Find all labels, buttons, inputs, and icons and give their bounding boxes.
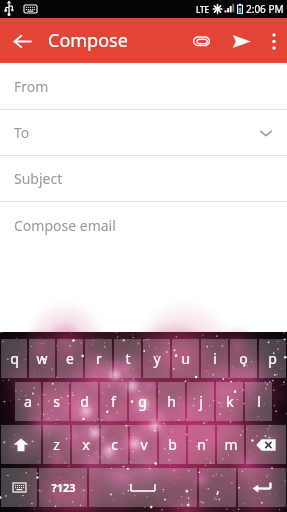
staticText: w <box>36 349 48 368</box>
button[interactable]: h <box>158 382 185 421</box>
staticText: v <box>140 435 148 454</box>
staticText: d <box>80 392 89 411</box>
staticText: To <box>14 123 30 142</box>
button[interactable]: m <box>217 425 244 464</box>
button[interactable]: More options <box>261 19 287 63</box>
button[interactable]: u <box>172 339 199 378</box>
button[interactable]: Shift <box>1 425 41 464</box>
staticText: Compose email <box>14 216 116 235</box>
staticText: x <box>82 435 90 454</box>
staticText: s <box>53 392 60 411</box>
button[interactable]: r <box>85 339 112 378</box>
button[interactable]: n <box>188 425 215 464</box>
button[interactable]: To <box>0 110 287 155</box>
button[interactable]: Send <box>221 21 261 61</box>
staticText: m <box>224 435 238 454</box>
button[interactable]: z <box>43 425 70 464</box>
button[interactable]: e <box>57 339 83 378</box>
button[interactable]: d <box>71 382 98 421</box>
staticText: n <box>197 435 206 454</box>
staticText: k <box>226 392 234 411</box>
staticText: ?123 <box>51 480 76 495</box>
staticText: l <box>257 392 261 411</box>
staticText: 2:06 PM <box>246 2 284 16</box>
button[interactable]: t <box>114 339 141 378</box>
button[interactable]: k <box>216 382 243 421</box>
button[interactable]: Compose email <box>0 202 287 248</box>
button[interactable]: ?123 <box>39 468 87 507</box>
staticText: r <box>96 349 102 368</box>
staticText: o <box>239 349 248 368</box>
staticText: g <box>138 392 147 411</box>
button[interactable]: p <box>259 339 286 378</box>
staticText: u <box>181 349 190 368</box>
button[interactable]: y <box>143 339 170 378</box>
button[interactable]: w <box>29 339 55 378</box>
staticText: Subject <box>14 169 63 188</box>
button[interactable]: Attach file <box>181 21 221 61</box>
button[interactable]: Enter <box>238 468 286 507</box>
staticText: LTE <box>196 4 210 15</box>
button[interactable]: o <box>230 339 257 378</box>
button[interactable]: l <box>245 382 272 421</box>
staticText: a <box>24 392 32 411</box>
staticText: y <box>153 349 161 368</box>
staticText: z <box>53 435 60 454</box>
button[interactable]: Space <box>89 468 197 507</box>
button[interactable]: Back <box>0 19 44 63</box>
button[interactable]: q <box>1 339 27 378</box>
button[interactable]: v <box>130 425 157 464</box>
staticText: i <box>213 349 217 368</box>
button[interactable]: a <box>15 382 41 421</box>
staticText: , <box>216 478 220 497</box>
button[interactable]: s <box>43 382 69 421</box>
button[interactable]: , <box>199 468 236 507</box>
staticText: t <box>125 349 131 368</box>
staticText: q <box>10 349 19 368</box>
staticText: From <box>14 77 49 96</box>
staticText: j <box>199 392 203 411</box>
staticText: f <box>111 392 116 411</box>
button[interactable]: x <box>72 425 99 464</box>
button[interactable]: Switch keyboard <box>1 468 37 507</box>
staticText: Compose <box>48 28 128 53</box>
button[interactable]: f <box>100 382 127 421</box>
button[interactable]: j <box>187 382 214 421</box>
button[interactable]: b <box>159 425 186 464</box>
button[interactable]: Backspace <box>246 425 286 464</box>
staticText: h <box>167 392 176 411</box>
button[interactable]: i <box>201 339 228 378</box>
staticText: b <box>168 435 177 454</box>
button[interactable]: c <box>101 425 128 464</box>
button[interactable]: g <box>129 382 156 421</box>
button[interactable]: From <box>0 63 287 109</box>
staticText: e <box>66 349 74 368</box>
staticText: p <box>268 349 277 368</box>
button[interactable]: Subject <box>0 156 287 201</box>
staticText: c <box>111 435 118 454</box>
